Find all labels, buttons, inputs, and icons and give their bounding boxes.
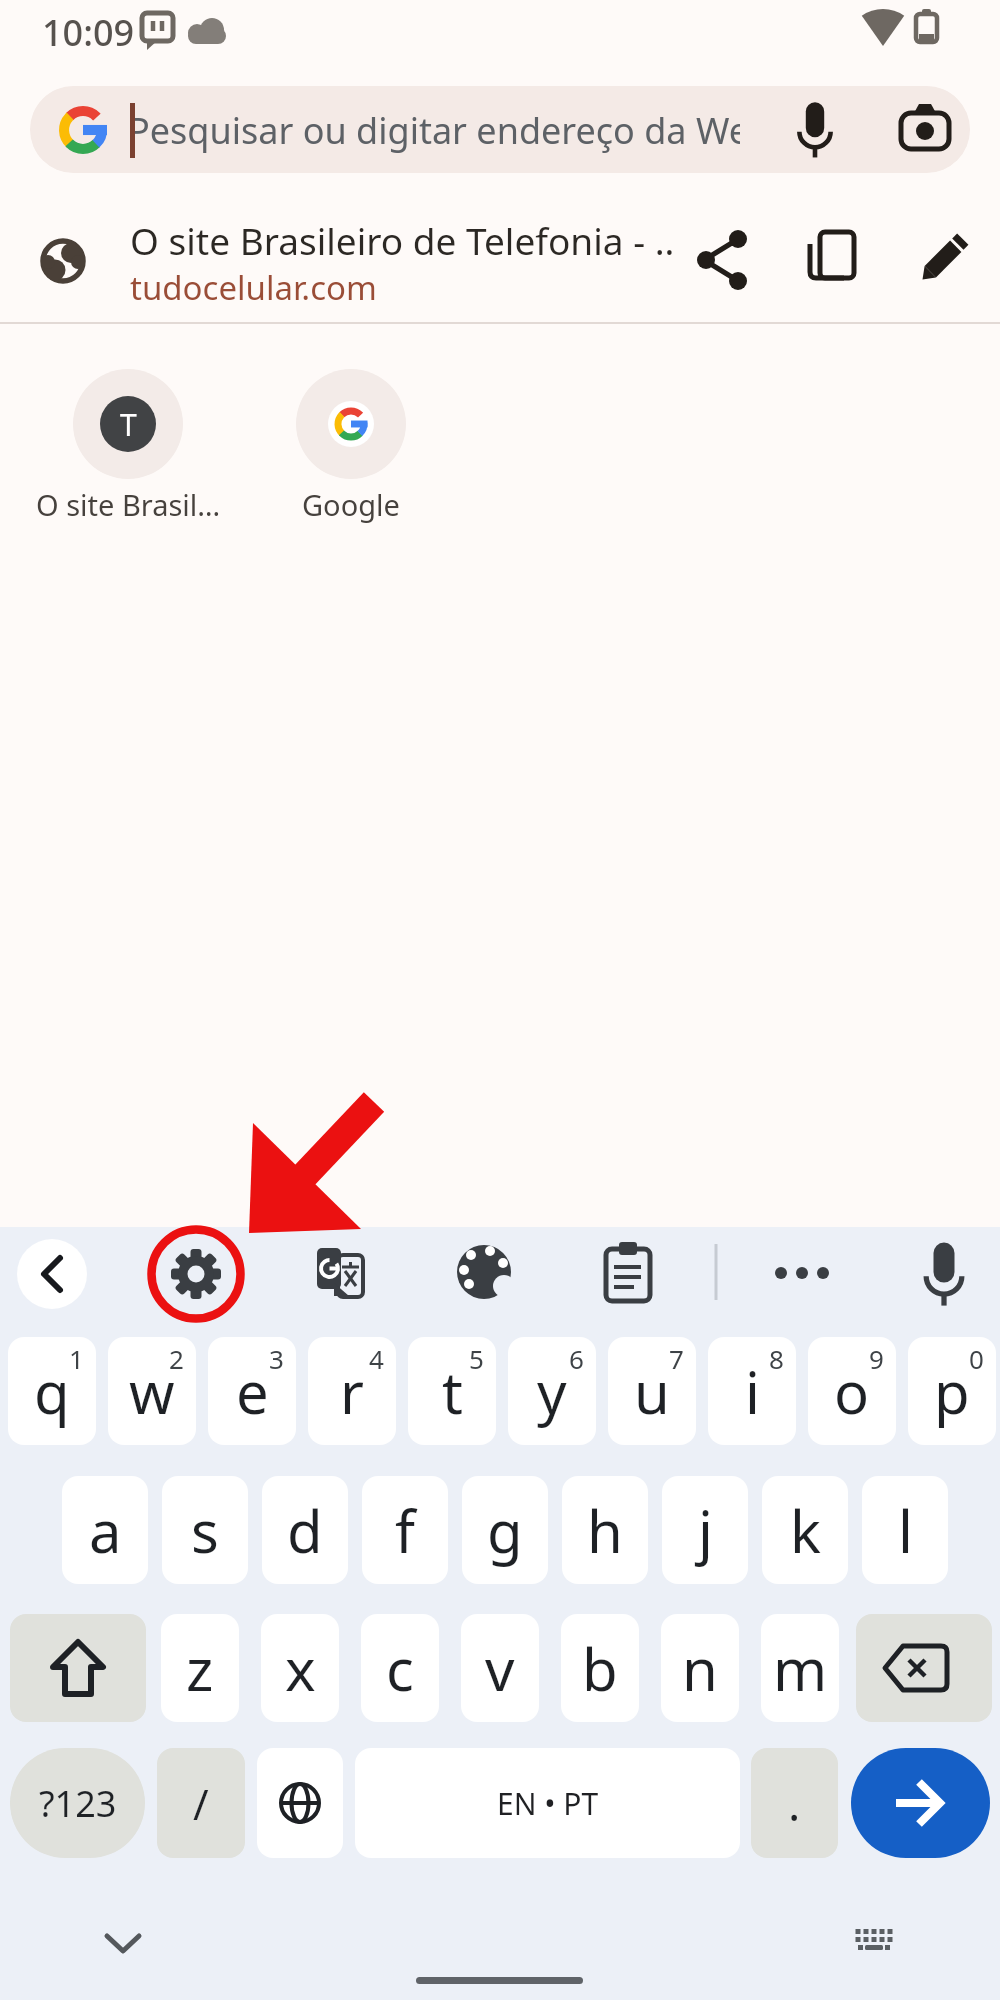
button[interactable] [444, 1234, 524, 1314]
staticText: z [186, 1629, 214, 1708]
button[interactable] [17, 1239, 87, 1309]
staticText: 10:09 [42, 8, 135, 50]
staticText: 7 [669, 1341, 684, 1376]
staticText: x [285, 1629, 316, 1708]
button[interactable]: s [162, 1476, 248, 1584]
button[interactable]: a [62, 1476, 148, 1584]
staticText: / [193, 1775, 209, 1832]
staticText: . [788, 1772, 801, 1835]
staticText: v [485, 1629, 515, 1708]
staticText: i [745, 1352, 760, 1431]
button[interactable] [856, 1614, 992, 1722]
staticText: 0 [969, 1341, 984, 1376]
staticText: g [487, 1491, 523, 1570]
button[interactable]: b [561, 1614, 639, 1722]
staticText: O site Brasileiro de Telefonia - … [130, 215, 675, 265]
staticText: 1 [69, 1341, 84, 1376]
button[interactable]: u [608, 1337, 696, 1445]
button[interactable]: w [108, 1337, 196, 1445]
staticText: k [790, 1491, 821, 1570]
button[interactable] [257, 1748, 343, 1858]
staticText: w [129, 1352, 175, 1431]
button[interactable] [907, 225, 979, 297]
button[interactable]: i [708, 1337, 796, 1445]
button[interactable] [685, 225, 757, 297]
button[interactable]: v [461, 1614, 539, 1722]
button[interactable]: c [361, 1614, 439, 1722]
staticText: 3 [269, 1341, 284, 1376]
button[interactable] [0, 200, 1000, 322]
button[interactable]: d [262, 1476, 348, 1584]
staticText: a [89, 1491, 122, 1570]
staticText: tudocelular.com [130, 265, 377, 307]
button[interactable] [300, 1234, 380, 1314]
staticText: q [34, 1352, 70, 1431]
button[interactable]: o [808, 1337, 896, 1445]
staticText: h [587, 1491, 623, 1570]
staticText: 2 [169, 1341, 184, 1376]
staticText: 5 [469, 1341, 484, 1376]
button[interactable]: r [308, 1337, 396, 1445]
button[interactable] [296, 369, 406, 479]
button[interactable] [588, 1234, 668, 1314]
staticText: j [698, 1491, 713, 1570]
button[interactable] [851, 1748, 990, 1858]
button[interactable]: j [662, 1476, 748, 1584]
staticText: t [442, 1352, 463, 1431]
staticText: EN • PT [497, 1783, 599, 1824]
button[interactable] [841, 1910, 907, 1976]
staticText: u [634, 1352, 670, 1431]
staticText: Google [302, 485, 400, 524]
staticText: e [236, 1352, 269, 1431]
button[interactable]: y [508, 1337, 596, 1445]
staticText: c [386, 1629, 414, 1708]
button[interactable]: n [661, 1614, 739, 1722]
staticText: Pesquisar ou digitar endereço da We [128, 106, 740, 155]
button[interactable]: / [157, 1748, 245, 1858]
staticText: y [537, 1352, 567, 1431]
button[interactable]: . [751, 1748, 838, 1858]
staticText: p [934, 1352, 970, 1431]
staticText: 6 [569, 1341, 584, 1376]
button[interactable] [762, 1234, 842, 1314]
button[interactable]: EN • PT [355, 1748, 740, 1858]
staticText: m [773, 1629, 828, 1708]
staticText: d [287, 1491, 323, 1570]
staticText: O site Brasil… [36, 485, 221, 524]
button[interactable]: l [862, 1476, 948, 1584]
staticText: f [395, 1491, 415, 1570]
button[interactable] [10, 1614, 146, 1722]
staticText: l [898, 1491, 913, 1570]
button[interactable]: p [908, 1337, 996, 1445]
button[interactable]: x [261, 1614, 339, 1722]
button[interactable]: z [161, 1614, 239, 1722]
staticText: 4 [369, 1341, 384, 1376]
staticText: b [582, 1629, 618, 1708]
staticText: n [682, 1629, 718, 1708]
button[interactable]: h [562, 1476, 648, 1584]
button[interactable]: e [208, 1337, 296, 1445]
button[interactable] [156, 1234, 236, 1314]
button[interactable] [905, 1234, 985, 1314]
button[interactable] [795, 225, 867, 297]
button[interactable]: m [761, 1614, 839, 1722]
button[interactable] [73, 369, 183, 479]
button[interactable]: q [8, 1337, 96, 1445]
staticText: o [834, 1352, 870, 1431]
staticText: T [120, 404, 137, 445]
staticText: r [340, 1352, 364, 1431]
button[interactable]: k [762, 1476, 848, 1584]
button[interactable]: t [408, 1337, 496, 1445]
staticText: ?123 [39, 1779, 117, 1828]
button[interactable]: g [462, 1476, 548, 1584]
staticText: 9 [869, 1341, 884, 1376]
staticText: 8 [769, 1341, 784, 1376]
button[interactable]: ?123 [10, 1748, 145, 1858]
button[interactable]: f [362, 1476, 448, 1584]
staticText: s [191, 1491, 219, 1570]
button[interactable] [90, 1910, 156, 1976]
button[interactable] [30, 86, 970, 173]
